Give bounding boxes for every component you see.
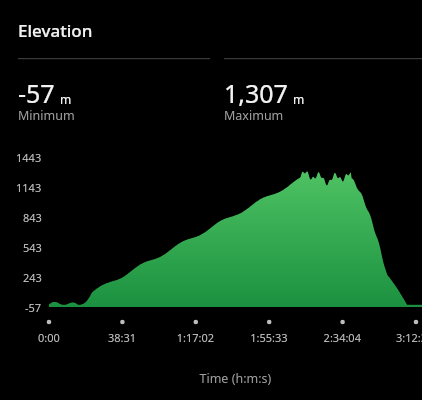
button[interactable]: Elevation chart: [0, 0, 422, 400]
